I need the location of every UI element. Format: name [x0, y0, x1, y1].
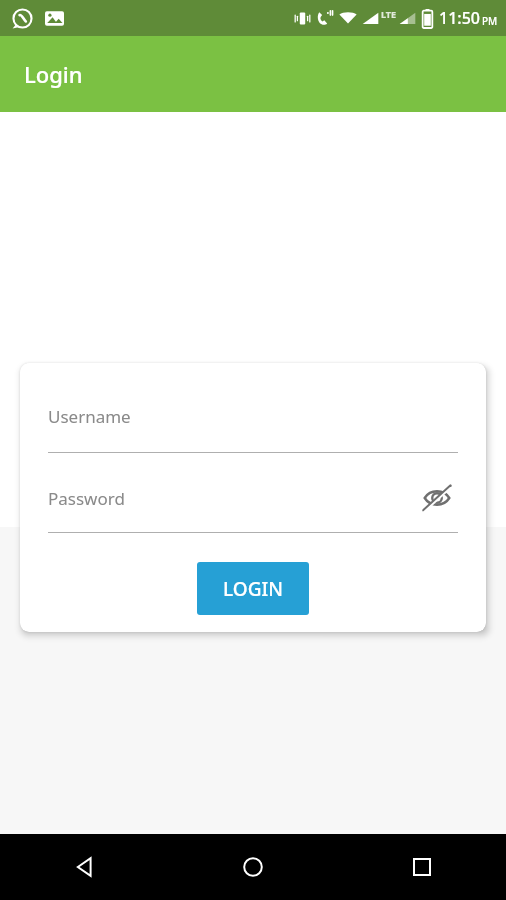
- staticText: 11:50: [439, 7, 480, 29]
- button[interactable]: Recent apps: [337, 834, 506, 900]
- staticText: LOGIN: [223, 576, 283, 602]
- button[interactable]: Home: [168, 834, 337, 900]
- button[interactable]: LOGIN: [197, 562, 309, 615]
- staticText: Username: [48, 405, 131, 428]
- staticText: LTE: [381, 8, 397, 20]
- button[interactable]: Back: [0, 834, 168, 900]
- staticText: Password: [48, 487, 125, 510]
- staticText: Login: [24, 59, 83, 89]
- button[interactable]: Show password: [414, 475, 460, 521]
- staticText: PM: [482, 14, 498, 28]
